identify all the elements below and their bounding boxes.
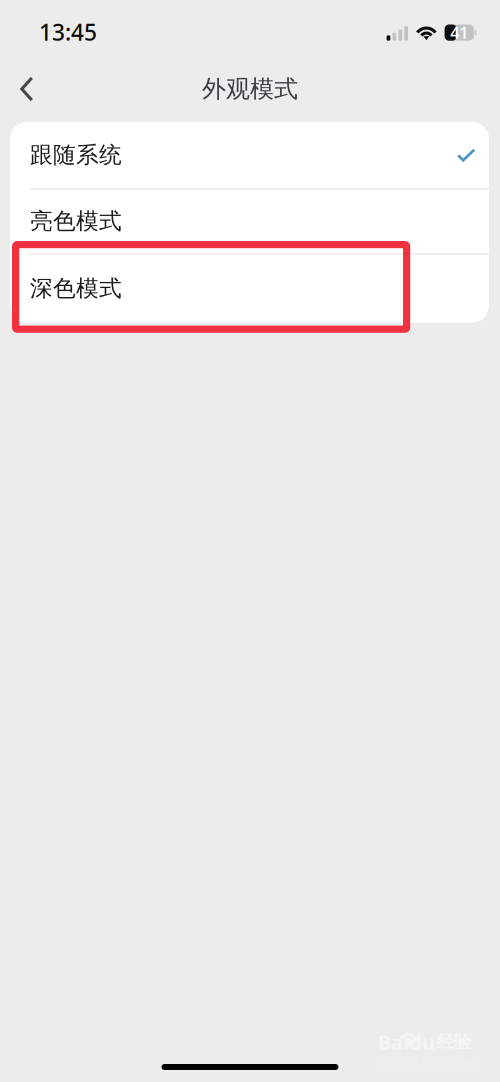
button[interactable]: 亮色模式 xyxy=(10,189,489,253)
staticText: 跟随系统 xyxy=(30,141,122,169)
staticText: Baidu xyxy=(378,1029,435,1055)
staticText: 深色模式 xyxy=(30,275,122,302)
button[interactable]: 跟随系统 xyxy=(10,122,489,188)
staticText: 外观模式 xyxy=(202,74,298,104)
button[interactable]: Back xyxy=(5,67,49,111)
staticText: 41 xyxy=(450,22,468,43)
staticText: 亮色模式 xyxy=(30,207,122,235)
staticText: 经验 xyxy=(437,1031,471,1053)
button[interactable]: 深色模式 xyxy=(10,254,489,322)
staticText: 13:45 xyxy=(39,17,97,47)
